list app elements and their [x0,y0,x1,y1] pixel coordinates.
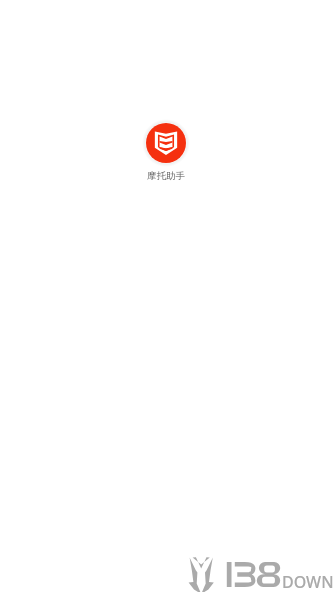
staticText: DOWN [282,571,333,592]
button[interactable]: 摩托助手 [142,119,190,182]
staticText: 摩托助手 [147,170,185,182]
